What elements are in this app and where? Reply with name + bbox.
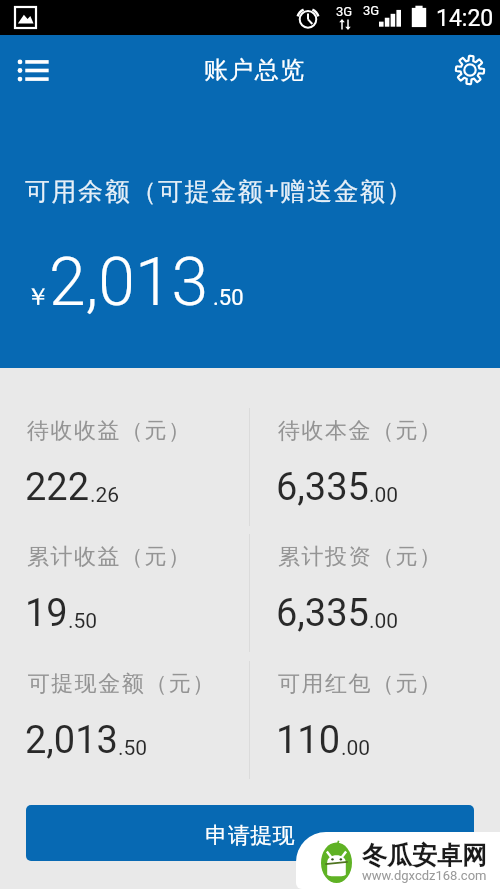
staticText: 可用余额（可提金额+赠送金额） xyxy=(25,173,414,207)
staticText: .00 xyxy=(369,609,399,634)
staticText: 可用红包（元） xyxy=(278,670,443,698)
staticText: 待收本金（元） xyxy=(278,417,443,445)
staticText: 2,013 xyxy=(25,718,118,763)
staticText: ￥ xyxy=(26,282,50,312)
staticText: 3G xyxy=(336,4,353,19)
staticText: www.dgxcdz168.com xyxy=(362,868,487,883)
button[interactable]: 可用红包（元） xyxy=(251,621,474,747)
button[interactable]: 待收本金（元） xyxy=(251,368,474,494)
staticText: 6,335 xyxy=(276,591,369,636)
staticText: 14:20 xyxy=(436,5,494,32)
staticText: 6,335 xyxy=(276,465,369,510)
staticText: .50 xyxy=(213,285,244,311)
staticText: .50 xyxy=(118,736,148,761)
button[interactable]: 待收收益（元） xyxy=(0,368,223,494)
button[interactable]: 申请提现 xyxy=(26,805,474,861)
staticText: 累计投资（元） xyxy=(278,543,443,571)
staticText: 19 xyxy=(25,591,68,636)
staticText: .26 xyxy=(90,483,120,508)
button[interactable]: 累计投资（元） xyxy=(251,494,474,620)
staticText: 待收收益（元） xyxy=(27,417,192,445)
button[interactable]: Menu xyxy=(4,41,62,99)
staticText: 冬瓜安卓网 xyxy=(362,840,487,871)
staticText: 账户总览 xyxy=(203,55,305,85)
staticText: 110 xyxy=(276,718,341,763)
staticText: 3G xyxy=(363,3,380,18)
staticText: .00 xyxy=(369,483,399,508)
staticText: 申请提现 xyxy=(205,822,295,850)
staticText: 222 xyxy=(25,465,90,510)
staticText: 累计收益（元） xyxy=(27,543,192,571)
staticText: 2,013 xyxy=(49,244,209,321)
button[interactable]: 累计收益（元） xyxy=(0,494,223,620)
staticText: .00 xyxy=(341,736,371,761)
staticText: 可提现金额（元） xyxy=(27,670,215,698)
staticText: .50 xyxy=(68,609,98,634)
button[interactable]: Settings xyxy=(441,41,499,99)
button[interactable]: 可提现金额（元） xyxy=(0,621,223,747)
